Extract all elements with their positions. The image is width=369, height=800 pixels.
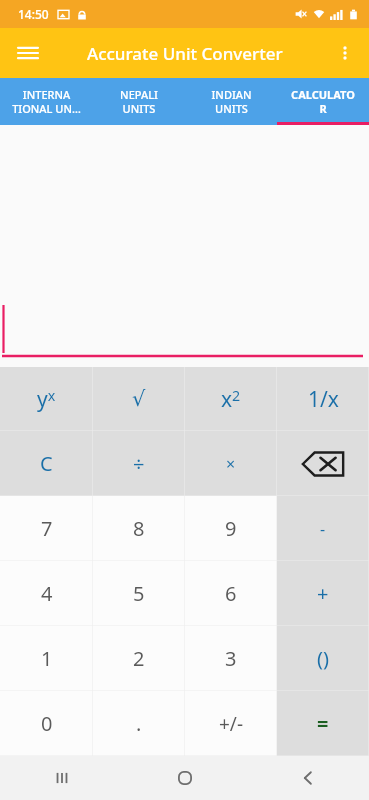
staticText: 1/x bbox=[308, 385, 339, 414]
staticText: 2 bbox=[133, 645, 145, 672]
staticText: +/- bbox=[219, 711, 244, 737]
button[interactable]: × bbox=[185, 431, 277, 496]
button[interactable]: CALCULATO R bbox=[277, 78, 369, 125]
staticText: Accurate Unit Converter bbox=[87, 42, 283, 65]
button[interactable]: 8 bbox=[93, 496, 185, 561]
button[interactable]: INTERNA TIONAL UN… bbox=[0, 78, 93, 125]
button[interactable]: () bbox=[277, 626, 369, 691]
button[interactable]: Recent apps bbox=[0, 756, 123, 800]
button[interactable]: 6 bbox=[185, 561, 277, 626]
button[interactable]: 0 bbox=[0, 691, 93, 756]
button[interactable]: x2 bbox=[185, 367, 277, 431]
button[interactable]: 1 bbox=[0, 626, 93, 691]
button[interactable]: C bbox=[0, 431, 93, 496]
button[interactable]: Home bbox=[123, 756, 246, 800]
staticText: INTERNA TIONAL UN… bbox=[12, 87, 81, 116]
button[interactable]: NEPALI UNITS bbox=[93, 78, 185, 125]
button[interactable]: 2 bbox=[93, 626, 185, 691]
staticText: 4 bbox=[41, 580, 53, 607]
staticText: . bbox=[136, 710, 142, 737]
button[interactable]: 3 bbox=[185, 626, 277, 691]
button[interactable]: INDIAN UNITS bbox=[185, 78, 277, 125]
staticText: 9 bbox=[225, 515, 237, 542]
staticText: × bbox=[226, 453, 236, 475]
button[interactable]: Back bbox=[246, 756, 369, 800]
staticText: √ bbox=[132, 387, 146, 411]
button[interactable]: 1/x bbox=[277, 367, 369, 431]
staticText: 0 bbox=[41, 710, 53, 737]
staticText: () bbox=[317, 645, 329, 672]
button[interactable]: Backspace bbox=[277, 431, 369, 496]
button[interactable]: 9 bbox=[185, 496, 277, 561]
button[interactable]: 5 bbox=[93, 561, 185, 626]
staticText: C bbox=[40, 450, 53, 477]
button[interactable]: ÷ bbox=[93, 431, 185, 496]
button[interactable]: + bbox=[277, 561, 369, 626]
staticText: 14:50 bbox=[18, 6, 49, 22]
staticText: 6 bbox=[225, 580, 237, 607]
staticText: 3 bbox=[225, 645, 237, 672]
staticText: 5 bbox=[133, 580, 145, 607]
staticText: + bbox=[317, 580, 329, 607]
staticText: ÷ bbox=[133, 450, 145, 477]
staticText: - bbox=[320, 518, 326, 540]
button[interactable]: √ bbox=[93, 367, 185, 431]
button[interactable]: +/- bbox=[185, 691, 277, 756]
button[interactable]: . bbox=[93, 691, 185, 756]
staticText: NEPALI UNITS bbox=[120, 87, 158, 116]
staticText: yx bbox=[37, 385, 56, 414]
staticText: INDIAN UNITS bbox=[211, 87, 252, 116]
button[interactable]: = bbox=[277, 691, 369, 756]
staticText: = bbox=[317, 710, 329, 737]
button[interactable]: More options bbox=[325, 33, 365, 73]
button[interactable]: Open navigation drawer bbox=[8, 33, 48, 73]
button[interactable]: 7 bbox=[0, 496, 93, 561]
staticText: 8 bbox=[133, 515, 145, 542]
staticText: CALCULATO R bbox=[291, 87, 355, 116]
button[interactable] bbox=[2, 299, 363, 361]
button[interactable]: - bbox=[277, 496, 369, 561]
staticText: x2 bbox=[221, 385, 241, 414]
staticText: 7 bbox=[41, 515, 53, 542]
button[interactable]: yx bbox=[0, 367, 93, 431]
button[interactable]: 4 bbox=[0, 561, 93, 626]
staticText: 1 bbox=[41, 645, 53, 672]
